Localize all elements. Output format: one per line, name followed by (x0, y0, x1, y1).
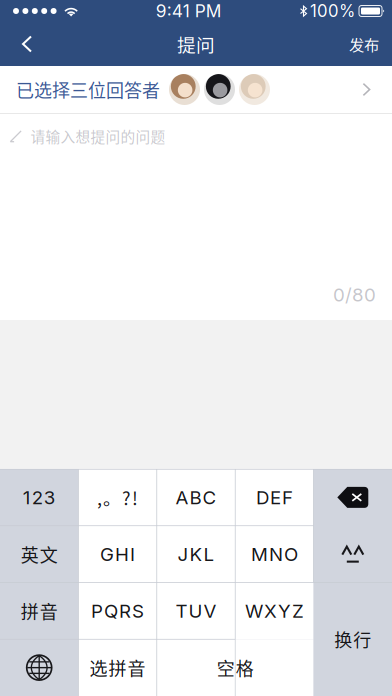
staticText: 9:41 PM (156, 0, 222, 21)
button[interactable]: MNO (235, 526, 314, 583)
button[interactable]: JKL (157, 526, 235, 583)
button[interactable]: Emoji (314, 526, 392, 583)
staticText: 请输入想提问的问题 (30, 125, 165, 147)
staticText: 换行 (334, 626, 371, 652)
staticText: 发布 (349, 33, 379, 55)
staticText: 选拼音 (90, 655, 146, 681)
staticText: 提问 (177, 30, 215, 57)
button[interactable]: 空格 (157, 639, 314, 696)
button[interactable]: Switch keyboard (0, 639, 78, 696)
staticText: WXYZ (245, 600, 304, 622)
button[interactable]: Back (0, 22, 54, 66)
staticText: GHI (100, 543, 135, 565)
button[interactable]: 拼音 (0, 582, 78, 639)
button[interactable]: ,。?! (78, 469, 157, 526)
staticText: 0/80 (333, 283, 376, 306)
button[interactable]: 英文 (0, 526, 78, 583)
staticText: DEF (256, 486, 293, 509)
staticText: MNO (251, 543, 298, 565)
staticText: PQRS (91, 600, 144, 622)
staticText: ,。?! (97, 484, 138, 510)
staticText: 100% (310, 1, 355, 21)
button[interactable]: 123 (0, 469, 78, 526)
staticText: 拼音 (21, 598, 58, 624)
button[interactable]: 已选择三位回答者 (0, 66, 392, 113)
button[interactable]: Delete (314, 469, 392, 526)
button[interactable]: ABC (157, 469, 235, 526)
button[interactable]: 换行 (314, 582, 392, 696)
staticText: TUV (175, 600, 216, 622)
button[interactable]: GHI (78, 526, 157, 583)
staticText: 123 (23, 486, 56, 509)
button[interactable]: PQRS (78, 582, 157, 639)
button[interactable]: DEF (235, 469, 314, 526)
button[interactable]: TUV (157, 582, 235, 639)
staticText: JKL (177, 543, 214, 565)
staticText: ABC (175, 486, 216, 509)
staticText: 已选择三位回答者 (16, 76, 160, 103)
button[interactable]: WXYZ (235, 582, 314, 639)
staticText: 英文 (21, 541, 58, 567)
staticText: 空格 (217, 655, 254, 681)
button[interactable]: 发布 (336, 22, 392, 66)
button[interactable]: 选拼音 (78, 639, 157, 696)
